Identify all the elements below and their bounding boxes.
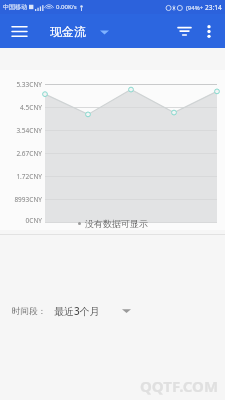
button[interactable]: More options xyxy=(197,19,221,43)
button[interactable]: 现金流 xyxy=(50,24,109,39)
staticText: 时间段： xyxy=(12,306,46,317)
staticText: (94%+ xyxy=(186,4,204,12)
staticText: 3.54CNY xyxy=(16,126,42,135)
button[interactable]: 时间段： xyxy=(0,297,225,325)
button[interactable]: Filter xyxy=(171,18,197,44)
staticText: QQTF.COM xyxy=(140,376,219,396)
staticText: 2.67CNY xyxy=(16,149,42,158)
staticText: 5.33CNY xyxy=(16,80,42,89)
staticText: 现金流 xyxy=(50,24,86,39)
staticText: 没有数据可显示 xyxy=(85,218,148,229)
staticText: 23:14 xyxy=(205,3,222,12)
button[interactable]: Open navigation drawer xyxy=(6,18,32,44)
staticText: 1.72CNY xyxy=(16,172,42,181)
staticText: 最近3个月 xyxy=(54,304,100,318)
staticText: 0CNY xyxy=(25,216,42,225)
staticText: 4.5CNY xyxy=(20,103,42,112)
staticText: 0.00K/s xyxy=(56,3,77,11)
staticText: 8993CNY xyxy=(14,195,42,204)
staticText: 中国移动 xyxy=(3,3,27,11)
